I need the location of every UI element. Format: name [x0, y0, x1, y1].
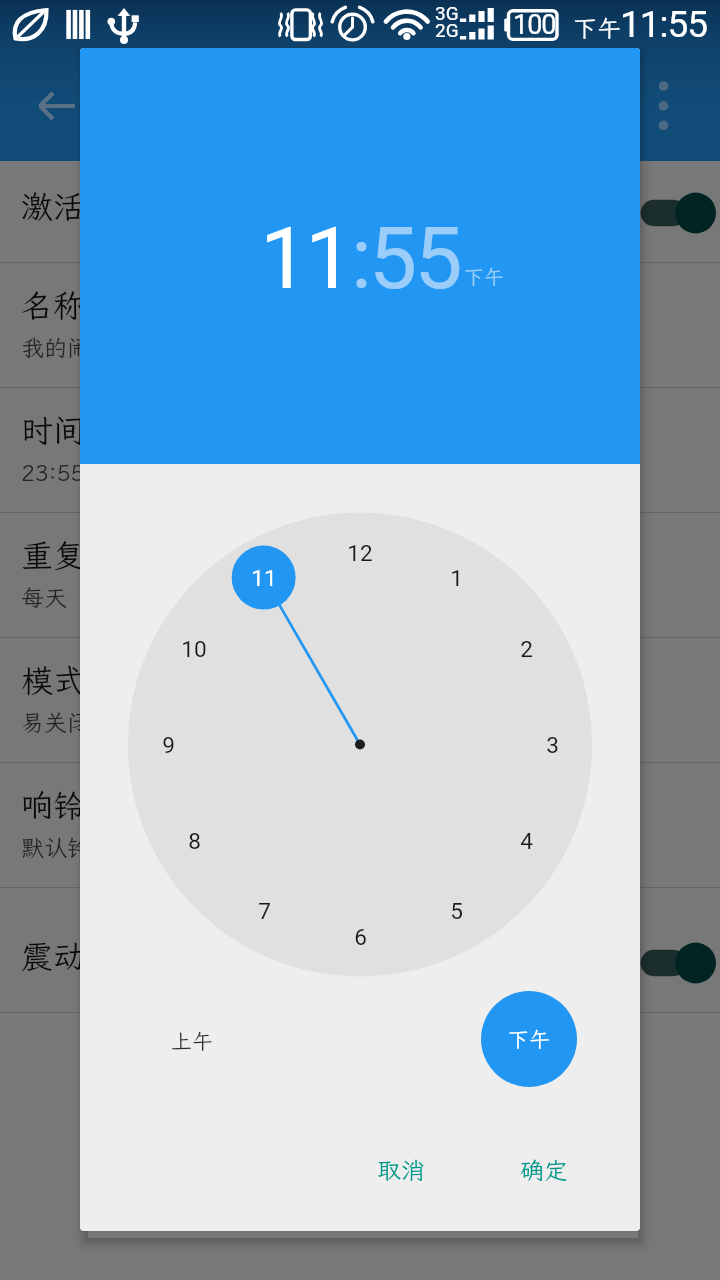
staticText: 1	[450, 565, 463, 591]
staticText: 3	[546, 732, 559, 758]
staticText: 时间	[21, 409, 86, 451]
button[interactable]: More options	[643, 70, 684, 142]
staticText: 12	[347, 540, 373, 566]
staticText: 默认铃声	[21, 832, 113, 862]
staticText: 确定	[520, 1154, 568, 1186]
staticText: 激活	[21, 185, 86, 227]
staticText: 6	[354, 924, 367, 950]
button[interactable]: 确定	[499, 1140, 589, 1200]
button[interactable]: 取消	[356, 1140, 446, 1200]
button[interactable]: 5	[424, 879, 488, 943]
button[interactable]: 8	[162, 809, 226, 873]
button[interactable]: 12	[328, 521, 392, 585]
staticText: 震动	[21, 935, 86, 977]
staticText: 23:55	[21, 457, 85, 487]
button[interactable]: 上午	[144, 993, 240, 1089]
staticText: 上午	[171, 1027, 213, 1055]
staticText: 7	[258, 898, 271, 924]
button[interactable]: 6	[328, 905, 392, 969]
staticText: 2G	[435, 19, 459, 41]
staticText: 响铃	[21, 784, 86, 826]
button[interactable]: Toggle	[620, 916, 720, 986]
staticText: 10	[181, 636, 207, 662]
staticText: 8	[188, 828, 201, 854]
button[interactable]: 重复	[0, 513, 720, 638]
button[interactable]: 3	[520, 713, 584, 777]
staticText: 下午	[464, 263, 504, 289]
button[interactable]: 震动	[0, 888, 720, 1013]
button[interactable]: 响铃	[0, 763, 720, 888]
button[interactable]: Toggle	[620, 166, 720, 236]
staticText: 每天	[21, 582, 67, 612]
staticText: 易关闭	[21, 707, 90, 737]
staticText: 3G	[435, 2, 459, 24]
button[interactable]: :55	[351, 208, 460, 309]
button[interactable]: 1	[424, 546, 488, 610]
staticText: 模式	[21, 659, 86, 701]
button[interactable]: 11	[232, 546, 296, 610]
button[interactable]: 2	[494, 617, 558, 681]
staticText: 2	[520, 636, 533, 662]
button[interactable]: 7	[232, 879, 296, 943]
staticText: 100	[513, 9, 556, 41]
button[interactable]: 10	[162, 617, 226, 681]
button[interactable]: 下午	[481, 991, 577, 1087]
staticText: 下午	[508, 1025, 550, 1053]
button[interactable]: 模式	[0, 638, 720, 763]
staticText: 11:55	[620, 3, 708, 46]
staticText: 4	[520, 828, 533, 854]
staticText: 11	[251, 565, 277, 591]
button[interactable]: 名称	[0, 263, 720, 388]
staticText: 9	[162, 732, 175, 758]
button[interactable]: 激活	[0, 138, 720, 263]
staticText: 下午	[573, 12, 621, 44]
button[interactable]: 11	[260, 208, 351, 309]
staticText: 取消	[377, 1154, 425, 1186]
staticText: 重复	[21, 534, 86, 576]
button[interactable]: 4	[494, 809, 558, 873]
button[interactable]: Back	[31, 80, 83, 132]
button[interactable]: 时间	[0, 388, 720, 513]
staticText: 5	[450, 898, 463, 924]
staticText: 名称	[21, 284, 86, 326]
button[interactable]: 9	[136, 713, 200, 777]
staticText: 我的闹钟	[21, 332, 113, 362]
